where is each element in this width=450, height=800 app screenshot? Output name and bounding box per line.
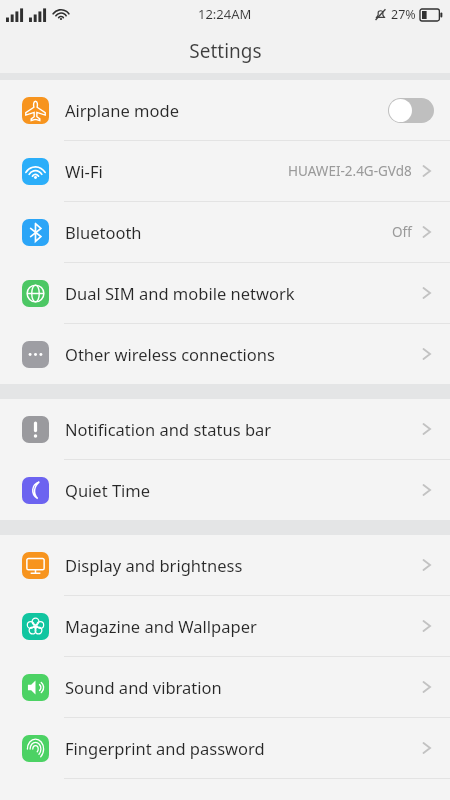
staticText: Airplane mode xyxy=(65,99,388,121)
staticText: Bluetooth xyxy=(65,221,392,243)
button[interactable]: Sound and vibration xyxy=(0,657,450,717)
staticText: 27% xyxy=(391,6,416,23)
staticText: Off xyxy=(392,223,412,241)
button[interactable]: Airplane mode toggle xyxy=(388,98,434,123)
staticText: Display and brightness xyxy=(65,554,420,576)
staticText: Sound and vibration xyxy=(65,676,420,698)
staticText: Quiet Time xyxy=(65,479,420,501)
button[interactable]: Bluetooth xyxy=(0,202,450,262)
staticText: Notification and status bar xyxy=(65,418,420,440)
button[interactable]: Notification and status bar xyxy=(0,399,450,459)
staticText: Settings xyxy=(189,38,262,64)
button[interactable]: Quiet Time xyxy=(0,460,450,520)
button[interactable]: Dual SIM and mobile network xyxy=(0,263,450,323)
button[interactable]: Other wireless connections xyxy=(0,324,450,384)
button[interactable]: Airplane mode xyxy=(0,80,450,140)
button[interactable]: Wi-Fi xyxy=(0,141,450,201)
staticText: HUAWEI-2.4G-GVd8 xyxy=(288,162,412,180)
button[interactable]: Display and brightness xyxy=(0,535,450,595)
staticText: Wi-Fi xyxy=(65,160,288,182)
staticText: Other wireless connections xyxy=(65,343,420,365)
staticText: Dual SIM and mobile network xyxy=(65,282,420,304)
button[interactable]: Fingerprint and password xyxy=(0,718,450,778)
button[interactable]: Magazine and Wallpaper xyxy=(0,596,450,656)
staticText: 12:24AM xyxy=(198,5,252,23)
staticText: Magazine and Wallpaper xyxy=(65,615,420,637)
staticText: Fingerprint and password xyxy=(65,737,420,759)
